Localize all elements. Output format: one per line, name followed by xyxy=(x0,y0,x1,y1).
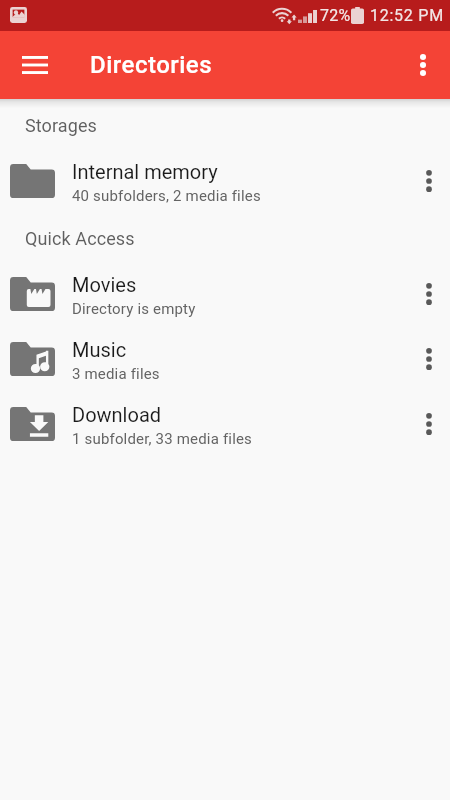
button[interactable]: More options for Movies xyxy=(406,266,450,322)
staticText: Download xyxy=(72,403,162,426)
button[interactable]: Music xyxy=(0,328,450,393)
button[interactable]: Movies xyxy=(0,263,450,328)
button[interactable]: More options for Download xyxy=(406,396,450,452)
button[interactable]: More options for Music xyxy=(406,331,450,387)
staticText: 3 media files xyxy=(72,365,160,383)
staticText: Directory is empty xyxy=(72,300,196,318)
staticText: 72% xyxy=(320,6,351,25)
staticText: Storages xyxy=(25,115,97,136)
staticText: Quick Access xyxy=(25,228,135,249)
button[interactable]: More options xyxy=(399,41,447,89)
staticText: Music xyxy=(72,338,127,361)
button[interactable]: Download xyxy=(0,393,450,458)
button[interactable]: Open navigation drawer xyxy=(11,41,59,89)
staticText: 1 subfolder, 33 media files xyxy=(72,430,253,448)
staticText: 12:52 PM xyxy=(370,6,444,25)
staticText: Internal memory xyxy=(72,160,218,183)
staticText: 40 subfolders, 2 media files xyxy=(72,187,261,205)
button[interactable]: Internal memory xyxy=(0,150,450,215)
staticText: Directories xyxy=(90,51,213,79)
button[interactable]: More options for Internal memory xyxy=(406,153,450,209)
staticText: Movies xyxy=(72,273,137,296)
